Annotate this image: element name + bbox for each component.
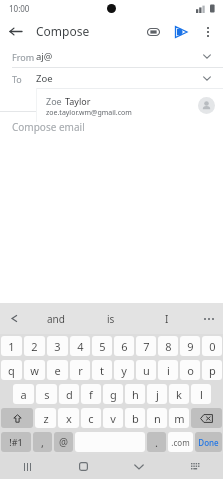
staticText: Done bbox=[198, 437, 219, 448]
staticText: k bbox=[176, 387, 182, 402]
button[interactable]: I bbox=[139, 303, 195, 334]
staticText: o bbox=[187, 363, 194, 378]
staticText: Compose bbox=[36, 23, 90, 39]
staticText: 5 bbox=[99, 339, 106, 354]
staticText: . bbox=[155, 435, 158, 450]
button[interactable]: x bbox=[58, 408, 79, 428]
button[interactable]: 9 bbox=[180, 336, 200, 356]
button[interactable]: 5 bbox=[92, 336, 112, 356]
button[interactable]: 2 bbox=[24, 336, 45, 356]
staticText: To bbox=[12, 73, 36, 85]
button[interactable]: Previous bbox=[0, 303, 28, 334]
button[interactable]: z bbox=[35, 408, 56, 428]
button[interactable]: 1 bbox=[1, 336, 22, 356]
button[interactable]: Hide keyboard bbox=[111, 454, 167, 479]
button[interactable]: To bbox=[0, 68, 223, 89]
staticText: f bbox=[89, 387, 93, 402]
staticText: c bbox=[88, 411, 94, 426]
button[interactable]: r bbox=[70, 360, 90, 380]
button[interactable]: 7 bbox=[136, 336, 156, 356]
button[interactable]: More suggestions bbox=[195, 303, 223, 334]
button[interactable]: i bbox=[158, 360, 178, 380]
staticText: m bbox=[174, 411, 185, 426]
button[interactable]: !#1 bbox=[1, 432, 31, 452]
button[interactable]: e bbox=[47, 360, 68, 380]
button[interactable]: f bbox=[81, 384, 101, 404]
staticText: v bbox=[110, 411, 116, 426]
button[interactable]: Zoe bbox=[36, 88, 223, 122]
button[interactable]: is bbox=[83, 303, 139, 334]
staticText: a bbox=[20, 387, 27, 402]
staticText: From bbox=[12, 51, 36, 63]
button[interactable]: From bbox=[0, 46, 223, 67]
button[interactable]: b bbox=[125, 408, 145, 428]
button[interactable]: 4 bbox=[70, 336, 90, 356]
button[interactable]: a bbox=[13, 384, 34, 404]
staticText: and bbox=[47, 312, 65, 326]
staticText: @ bbox=[59, 435, 68, 449]
button[interactable]: @ bbox=[54, 432, 73, 452]
staticText: 8 bbox=[165, 339, 172, 354]
button[interactable]: Shift bbox=[1, 408, 33, 428]
button[interactable]: k bbox=[169, 384, 189, 404]
button[interactable]: 0 bbox=[202, 336, 222, 356]
button[interactable]: j bbox=[147, 384, 167, 404]
button[interactable]: and bbox=[28, 303, 83, 334]
staticText: u bbox=[143, 363, 150, 378]
staticText: .com bbox=[171, 437, 190, 448]
staticText: 0 bbox=[209, 339, 216, 354]
button[interactable]: w bbox=[24, 360, 45, 380]
button[interactable]: n bbox=[147, 408, 167, 428]
button[interactable]: c bbox=[81, 408, 101, 428]
button[interactable]: Done bbox=[195, 432, 222, 452]
button[interactable]: Backspace bbox=[191, 408, 222, 428]
button[interactable]: m bbox=[169, 408, 189, 428]
button[interactable]: Back bbox=[0, 16, 30, 46]
button[interactable]: Send bbox=[167, 18, 194, 45]
staticText: e bbox=[54, 363, 61, 378]
button[interactable]: v bbox=[103, 408, 123, 428]
staticText: 4 bbox=[77, 339, 84, 354]
staticText: i bbox=[167, 363, 170, 378]
button[interactable]: l bbox=[191, 384, 211, 404]
staticText: 1 bbox=[8, 339, 15, 354]
button[interactable]: More options bbox=[194, 18, 221, 45]
button[interactable]: s bbox=[36, 384, 57, 404]
button[interactable]: g bbox=[103, 384, 123, 404]
staticText: zoe.taylor.wm@gmail.com bbox=[46, 108, 132, 118]
button[interactable]: . bbox=[147, 432, 166, 452]
button[interactable]: , bbox=[33, 432, 52, 452]
staticText: aj@ bbox=[36, 50, 53, 63]
button[interactable]: Recents bbox=[0, 454, 55, 479]
staticText: y bbox=[121, 363, 127, 378]
staticText: 2 bbox=[31, 339, 38, 354]
staticText: 6 bbox=[121, 339, 128, 354]
button[interactable]: 6 bbox=[114, 336, 134, 356]
staticText: x bbox=[66, 411, 72, 426]
button[interactable]: Attach file bbox=[140, 18, 167, 45]
button[interactable]: h bbox=[125, 384, 145, 404]
staticText: h bbox=[132, 387, 139, 402]
button[interactable]: y bbox=[114, 360, 134, 380]
button[interactable]: 8 bbox=[158, 336, 178, 356]
staticText: Compose email bbox=[12, 120, 85, 134]
staticText: t bbox=[100, 363, 104, 378]
staticText: g bbox=[110, 387, 117, 402]
button[interactable]: 3 bbox=[47, 336, 68, 356]
button[interactable]: Home bbox=[55, 454, 111, 479]
button[interactable]: q bbox=[1, 360, 22, 380]
staticText: I bbox=[165, 312, 169, 326]
button[interactable]: o bbox=[180, 360, 200, 380]
button[interactable]: Switch keyboard bbox=[167, 454, 223, 479]
staticText: 7 bbox=[143, 339, 150, 354]
staticText: q bbox=[8, 363, 15, 378]
staticText: r bbox=[78, 363, 83, 378]
button[interactable]: p bbox=[202, 360, 222, 380]
button[interactable]: u bbox=[136, 360, 156, 380]
button[interactable]: .com bbox=[168, 432, 193, 452]
button[interactable]: t bbox=[92, 360, 112, 380]
staticText: z bbox=[43, 411, 49, 426]
button[interactable]: d bbox=[59, 384, 79, 404]
staticText: !#1 bbox=[9, 436, 23, 448]
